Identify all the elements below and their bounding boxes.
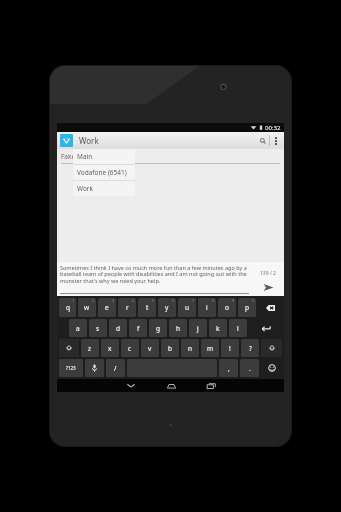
button[interactable]: Send [260,280,276,294]
staticText: , [228,364,230,373]
staticText: ? [249,344,252,353]
button[interactable]: Vodafone (6541) [73,165,135,180]
staticText: Sometimes I think I have so much more fu… [60,264,255,285]
staticText: 4 [132,298,135,303]
staticText: 00:32 [265,124,281,132]
staticText: l [237,324,239,333]
button[interactable]: Shift [261,339,282,357]
staticText: Vodafone (6541) [77,168,127,177]
staticText: b [168,344,172,353]
button[interactable]: App icon [60,134,73,147]
staticText: s [96,324,100,333]
staticText: n [188,344,193,353]
button[interactable]: ? [241,339,259,357]
staticText: 1 [72,298,75,303]
staticText: Work [79,135,99,146]
button[interactable]: j [189,319,207,337]
staticText: x [108,344,112,353]
staticText: g [156,324,160,333]
staticText: 8 [212,298,215,303]
staticText: ! [229,344,231,353]
button[interactable]: a [69,319,87,337]
staticText: 9 [232,298,235,303]
button[interactable]: , [219,359,238,377]
staticText: j [197,324,199,333]
button[interactable]: d [109,319,127,337]
staticText: f [137,324,140,333]
button[interactable]: k [209,319,227,337]
button[interactable]: 4 [118,298,136,317]
button[interactable]: Main [73,149,135,164]
button[interactable]: 6 [158,298,176,317]
button[interactable]: n [181,339,199,357]
button[interactable]: 5 [138,298,156,317]
staticText: . [249,364,251,373]
staticText: 139 / 2 [260,270,276,277]
staticText: 6 [172,298,175,303]
staticText: o [225,303,229,312]
button[interactable]: m [201,339,219,357]
staticText: e [105,303,109,312]
staticText: p [245,303,249,312]
button[interactable]: l [229,319,247,337]
staticText: y [165,303,169,312]
staticText: 5 [152,298,155,303]
button[interactable]: ?123 [59,359,83,377]
staticText: t [146,303,149,312]
staticText: 3 [112,298,115,303]
button[interactable]: f [129,319,147,337]
button[interactable]: ! [221,339,239,357]
button[interactable]: 1 [59,298,76,317]
staticText: w [84,303,90,312]
button[interactable]: / [106,359,125,377]
staticText: u [185,303,190,312]
staticText: v [148,344,152,353]
staticText: Fake Contact (1234). [61,152,123,161]
button[interactable]: 3 [98,298,116,317]
staticText: h [176,324,181,333]
button[interactable]: 2 [78,298,96,317]
button[interactable]: More options [270,132,281,149]
button[interactable]: v [141,339,159,357]
button[interactable]: s [89,319,107,337]
staticText: Main [77,152,93,161]
button[interactable]: 7 [178,298,196,317]
button[interactable]: Work [73,181,135,196]
button[interactable]: z [81,339,99,357]
staticText: m [207,344,214,353]
button[interactable]: 9 [218,298,236,317]
button[interactable]: Search [257,132,269,149]
button[interactable]: h [169,319,187,337]
staticText: d [116,324,120,333]
button[interactable]: . [240,359,259,377]
staticText: q [66,303,70,312]
staticText: 0 [252,298,255,303]
staticText: i [206,303,208,312]
button[interactable]: Emoji [261,359,282,377]
button[interactable]: Shift [59,339,79,357]
button[interactable]: Voice input [85,359,104,377]
staticText: / [114,364,117,373]
button[interactable]: 0 [238,298,256,317]
button[interactable]: x [101,339,119,357]
staticText: Work [77,184,94,193]
button[interactable]: 8 [198,298,216,317]
button[interactable]: Home [151,379,191,392]
staticText: 2 [92,298,95,303]
staticText: z [88,344,92,353]
button[interactable]: g [149,319,167,337]
staticText: r [126,303,129,312]
staticText: ?123 [66,365,76,371]
staticText: k [216,324,220,333]
button[interactable]: Work [79,132,257,149]
staticText: 7 [192,298,195,303]
button[interactable]: Hide keyboard [111,379,151,392]
staticText: c [128,344,132,353]
button[interactable]: Recent apps [191,379,231,392]
button[interactable]: Backspace [258,298,282,317]
staticText: a [76,324,80,333]
button[interactable]: b [161,339,179,357]
button[interactable]: c [121,339,139,357]
button[interactable]: Enter [249,319,282,337]
